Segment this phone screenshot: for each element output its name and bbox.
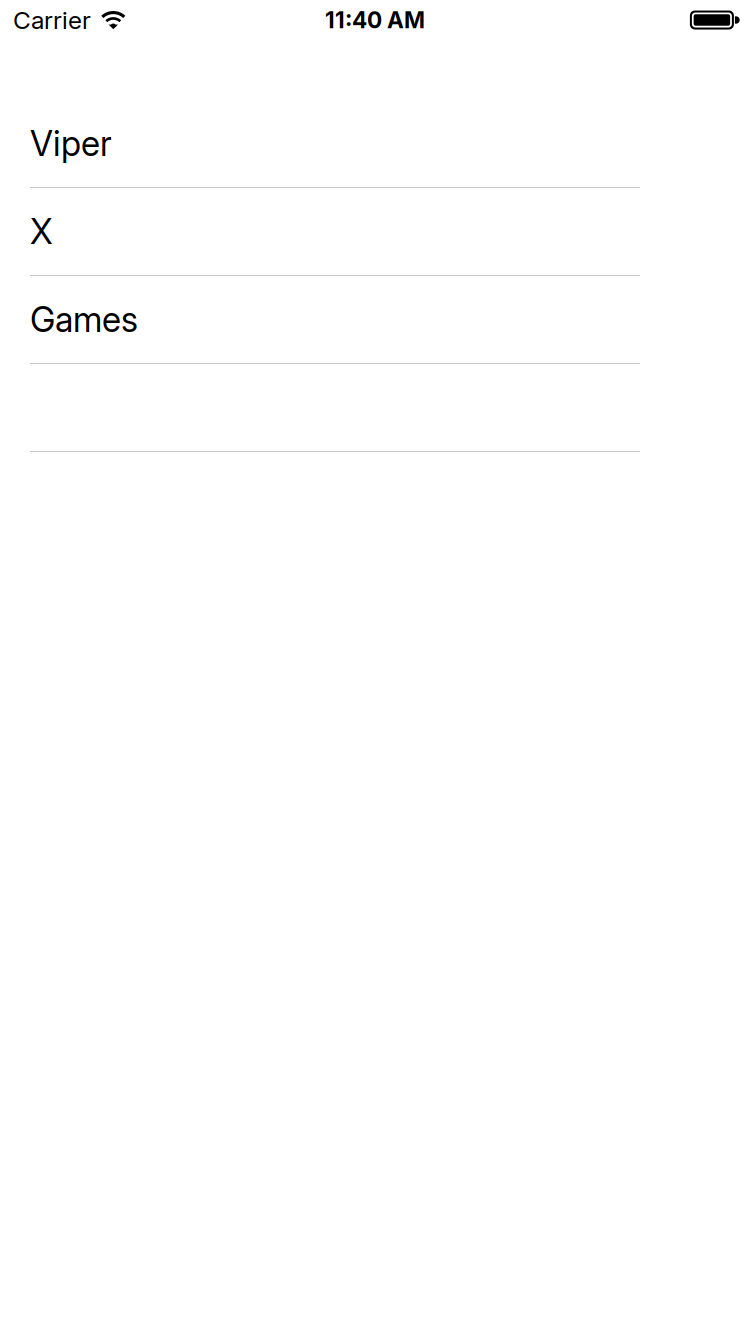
staticText: 11:40 AM <box>325 6 425 34</box>
staticText: X <box>30 211 53 252</box>
staticText: Carrier <box>13 5 91 35</box>
staticText: Viper <box>30 123 112 164</box>
button[interactable]: Games <box>0 276 640 364</box>
staticText: Games <box>30 299 138 340</box>
button[interactable]: Viper <box>0 100 640 188</box>
button[interactable]: X <box>0 188 640 276</box>
